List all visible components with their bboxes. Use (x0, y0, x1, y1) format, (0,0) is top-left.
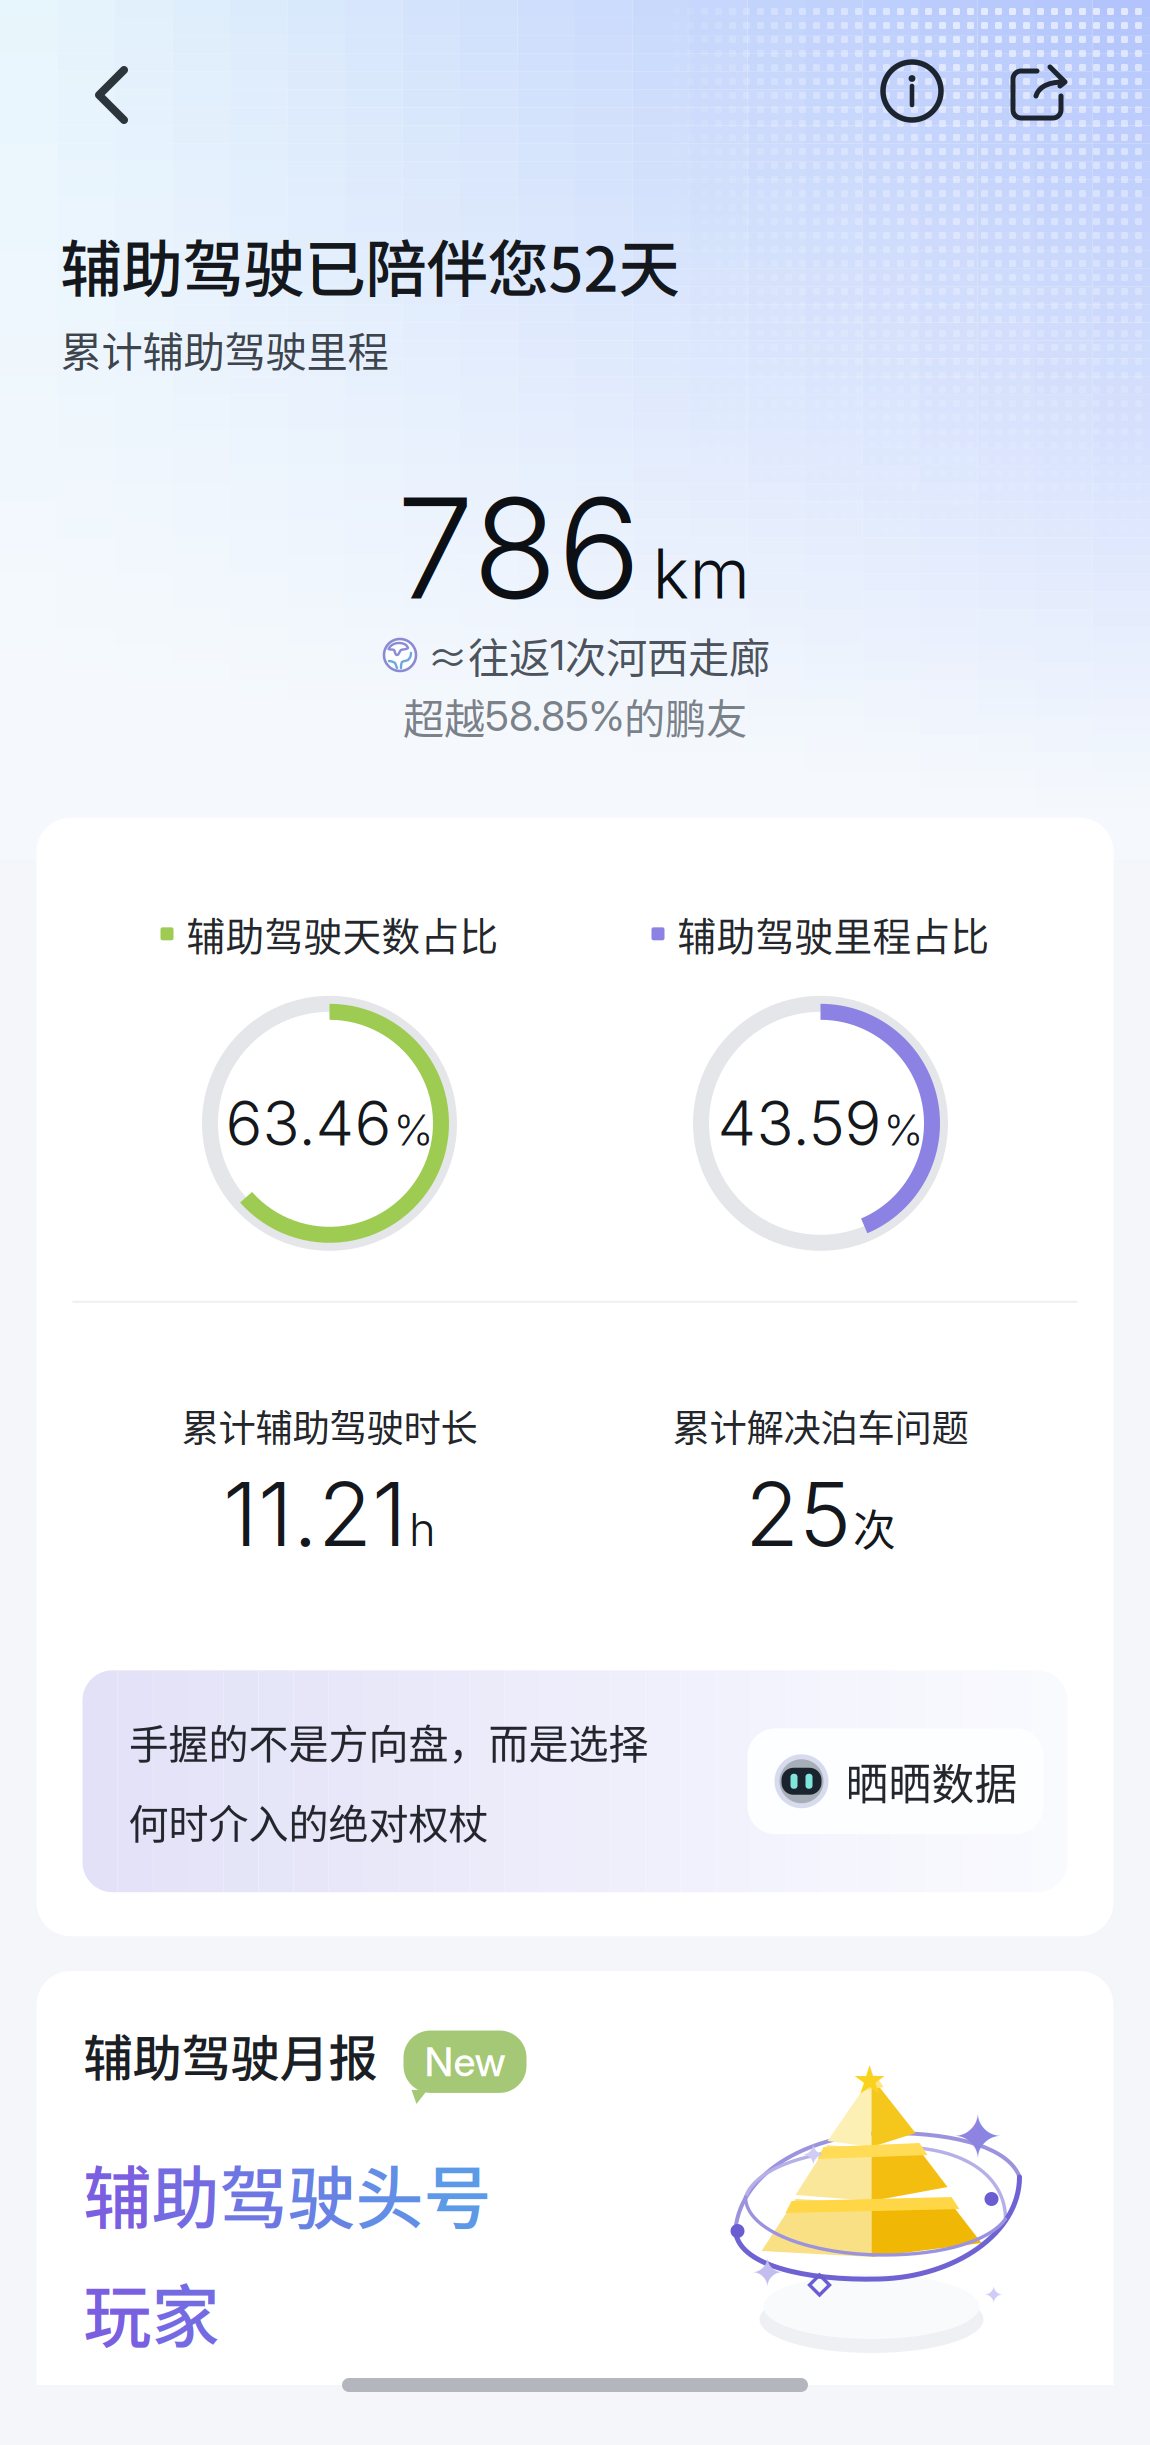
staticText: 次河西走廊 (565, 625, 770, 685)
staticText: 1 (550, 630, 565, 680)
staticText: 累计解决泊车问题 (672, 1399, 968, 1453)
staticText: 辅 (83, 2144, 151, 2243)
button[interactable]: 辅助驾驶月报 (36, 1971, 1113, 2445)
staticText: 驾 (219, 2144, 287, 2243)
staticText: 助 (151, 2144, 219, 2243)
staticText: h (409, 1502, 436, 1557)
staticText: 玩 (83, 2263, 151, 2361)
staticText: km (652, 531, 749, 615)
staticText: ✦ (952, 2101, 1003, 2173)
staticText: 辅助驾驶已陪伴您52天 (60, 221, 679, 309)
staticText: ★ (852, 2060, 887, 2102)
staticText: 手握的不是方向盘，而是选择 (128, 1712, 648, 1770)
button[interactable]: Information (863, 42, 961, 140)
staticText: 何时介入的绝对权杖 (128, 1792, 488, 1850)
staticText: 25 (745, 1461, 851, 1567)
staticText: 号 (423, 2144, 491, 2243)
staticText: 头 (355, 2144, 423, 2243)
staticText: 辅助驾驶月报 (83, 2019, 377, 2090)
button[interactable]: Share (987, 40, 1089, 142)
staticText: 晒晒数据 (845, 1750, 1017, 1812)
staticText: % (393, 1104, 433, 1156)
staticText: 58.85% (485, 691, 624, 741)
staticText: % (883, 1104, 923, 1156)
staticText: 的鹏友 (624, 686, 747, 746)
staticText: 次 (853, 1497, 896, 1558)
button[interactable]: 晒晒数据 (747, 1728, 1043, 1834)
staticText: 累计辅助驾驶时长 (181, 1399, 477, 1453)
staticText: New (424, 2037, 505, 2086)
staticText: 63.46 (225, 1086, 391, 1160)
staticText: ✦ (750, 2250, 784, 2296)
staticText: ✦ (801, 2138, 826, 2172)
staticText: 家 (151, 2263, 219, 2361)
staticText: 11.21 (223, 1461, 407, 1567)
button[interactable]: Back (66, 39, 158, 151)
staticText: ≈往返 (427, 625, 550, 685)
staticText: 43.59 (717, 1086, 881, 1160)
staticText: ✦ (983, 2281, 1003, 2309)
staticText: 786 (396, 464, 640, 632)
staticText: 辅助驾驶里程占比 (677, 906, 989, 962)
staticText: 辅助驾驶天数占比 (186, 906, 498, 962)
staticText: 驶 (287, 2144, 355, 2243)
staticText: 累计辅助驾驶里程 (60, 319, 388, 379)
staticText: 超越 (403, 686, 485, 746)
